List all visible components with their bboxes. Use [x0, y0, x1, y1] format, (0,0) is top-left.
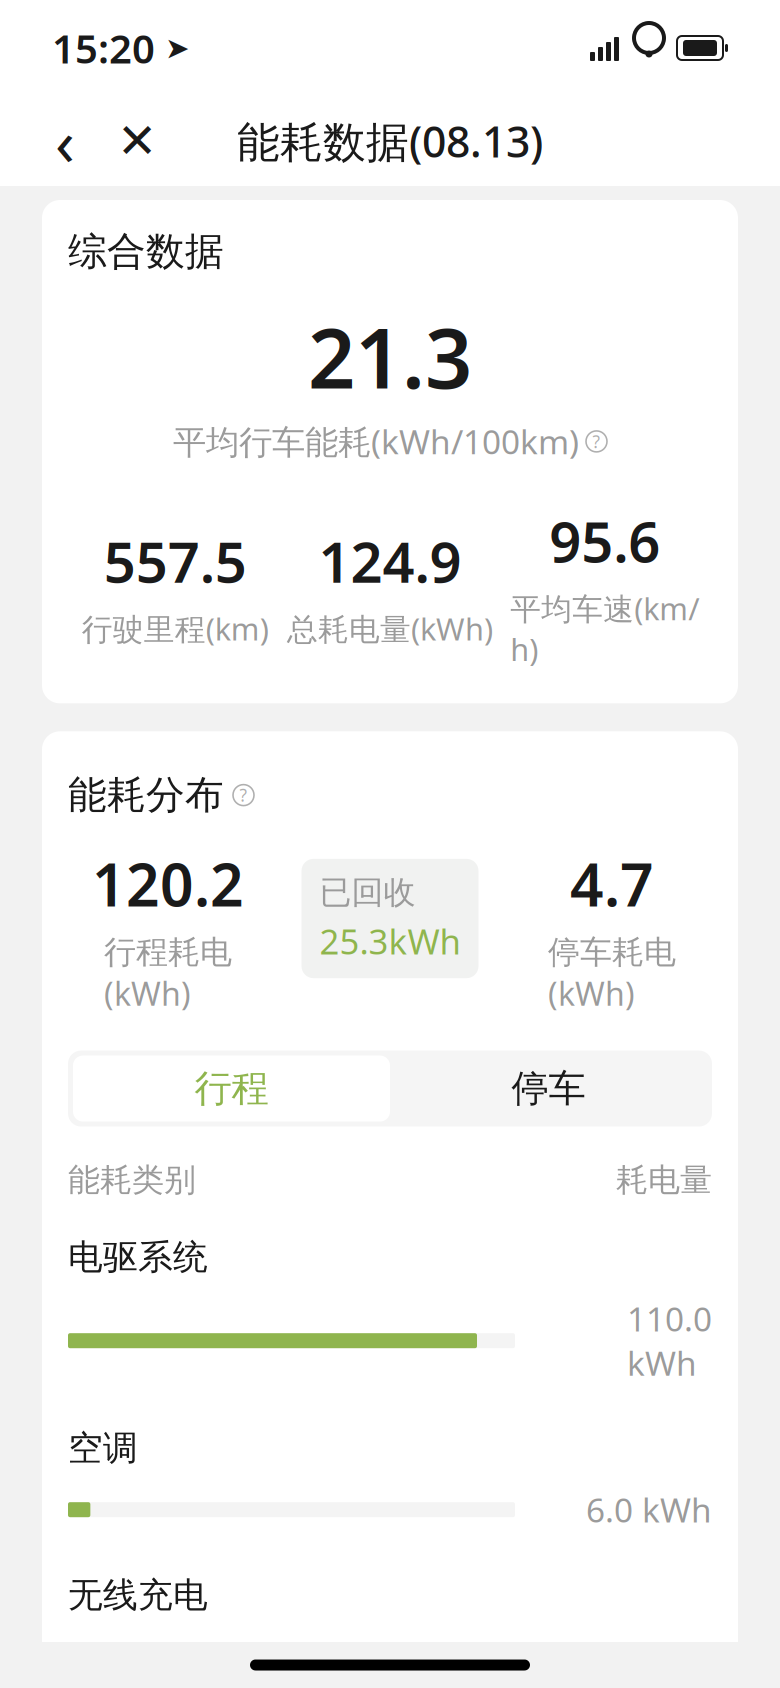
staticText: ?: [592, 430, 600, 453]
staticText: 综合数据: [68, 228, 224, 275]
staticText: 耗电量: [616, 1161, 712, 1200]
staticText: 平均车速(km/h): [510, 588, 699, 669]
button[interactable]: Close: [112, 111, 162, 171]
staticText: 95.6: [549, 503, 660, 578]
staticText: 110.0 kWh: [627, 1296, 712, 1385]
staticText: 行程: [194, 1066, 268, 1111]
staticText: 行驶里程(km): [82, 608, 269, 649]
staticText: 15:20: [52, 21, 155, 74]
staticText: 124.9: [318, 524, 461, 598]
staticText: 电驱系统: [68, 1236, 208, 1278]
staticText: 平均行车能耗(kWh/100km): [173, 419, 579, 464]
staticText: ?: [239, 784, 247, 807]
button[interactable]: 停车: [390, 1056, 707, 1122]
staticText: 6.0 kWh: [586, 1487, 712, 1532]
staticText: 4.7: [570, 845, 654, 923]
staticText: ✕: [117, 114, 157, 168]
staticText: 行程耗电(kWh): [104, 933, 232, 1015]
staticText: 能耗数据(08.13): [237, 113, 543, 169]
staticText: ➤: [165, 31, 190, 65]
staticText: 0.0 kWh: [586, 1634, 712, 1679]
staticText: 120.2: [92, 845, 244, 923]
staticText: 无线充电: [68, 1574, 208, 1616]
staticText: 空调: [68, 1427, 138, 1470]
staticText: 已回收: [319, 873, 415, 912]
button[interactable]: Back: [40, 111, 90, 171]
staticText: 能耗分布: [68, 771, 224, 819]
staticText: 21.3: [308, 301, 472, 411]
staticText: 能耗类别: [68, 1161, 196, 1200]
staticText: 总耗电量(kWh): [287, 608, 493, 649]
staticText: 25.3kWh: [319, 918, 460, 964]
staticText: 停车: [511, 1066, 585, 1111]
staticText: 停车耗电(kWh): [548, 933, 676, 1015]
staticText: ‹: [55, 98, 75, 183]
staticText: 557.5: [104, 524, 247, 598]
button[interactable]: 行程: [73, 1056, 390, 1122]
